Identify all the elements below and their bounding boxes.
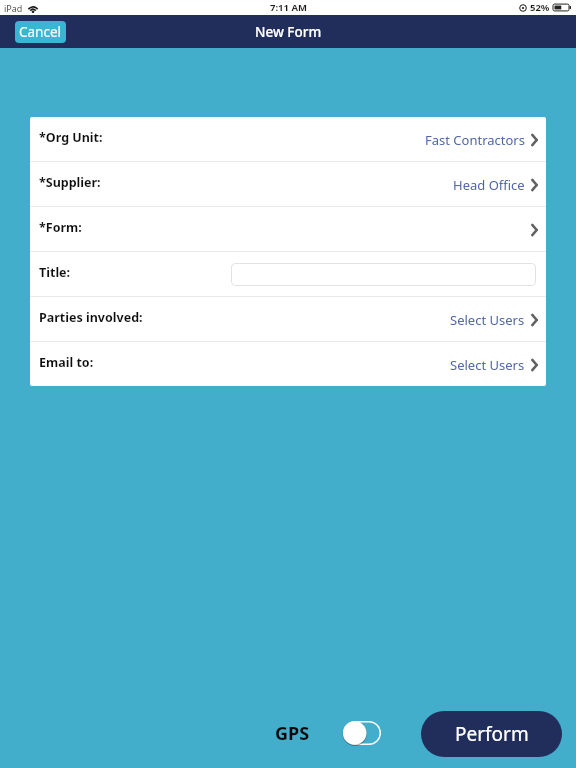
staticText: GPS <box>275 721 310 746</box>
staticText: *Supplier: <box>39 174 101 191</box>
staticText: *Org Unit: <box>39 129 103 146</box>
staticText: 7:11 AM <box>270 1 307 14</box>
staticText: *Form: <box>39 219 82 236</box>
staticText: 52% <box>530 1 550 14</box>
staticText: Head Office <box>453 176 525 194</box>
button[interactable]: *Form: <box>30 207 546 251</box>
staticText: Email to: <box>39 354 94 371</box>
staticText: Cancel <box>19 23 62 41</box>
staticText: Select Users <box>450 311 525 329</box>
button[interactable]: Title input <box>231 263 536 286</box>
button[interactable]: *Supplier: <box>30 162 546 206</box>
button[interactable]: Email to: <box>30 342 546 386</box>
staticText: Parties involved: <box>39 309 143 326</box>
staticText: iPad <box>4 2 23 14</box>
staticText: Fast Contractors <box>425 131 525 149</box>
staticText: New Form <box>255 23 322 41</box>
button[interactable]: Parties involved: <box>30 297 546 341</box>
button[interactable]: Cancel <box>15 21 66 43</box>
button[interactable]: *Org Unit: <box>30 117 546 161</box>
staticText: Perform <box>455 721 529 747</box>
button[interactable]: GPS <box>275 721 310 746</box>
button[interactable]: Title: <box>30 252 546 296</box>
staticText: Select Users <box>450 356 525 374</box>
button[interactable]: Perform <box>421 711 562 757</box>
staticText: Title: <box>39 264 71 281</box>
button[interactable]: GPS toggle <box>343 721 381 745</box>
